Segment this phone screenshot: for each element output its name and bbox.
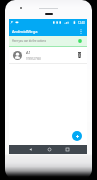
staticText: Here you can do the actions xyxy=(12,39,46,43)
button[interactable]: Home xyxy=(44,145,54,154)
button[interactable]: Delete xyxy=(74,51,83,60)
staticText: 9789527968 xyxy=(26,57,41,61)
staticText: AndroidMega xyxy=(12,29,38,34)
button[interactable]: Recent apps xyxy=(62,145,72,154)
button[interactable]: Add contact xyxy=(72,131,82,141)
staticText: 12:30 xyxy=(78,21,85,25)
staticText: A1 xyxy=(26,50,31,55)
button[interactable]: A1 xyxy=(9,47,87,63)
button[interactable]: Back xyxy=(25,145,35,154)
button[interactable]: More options xyxy=(77,27,85,35)
